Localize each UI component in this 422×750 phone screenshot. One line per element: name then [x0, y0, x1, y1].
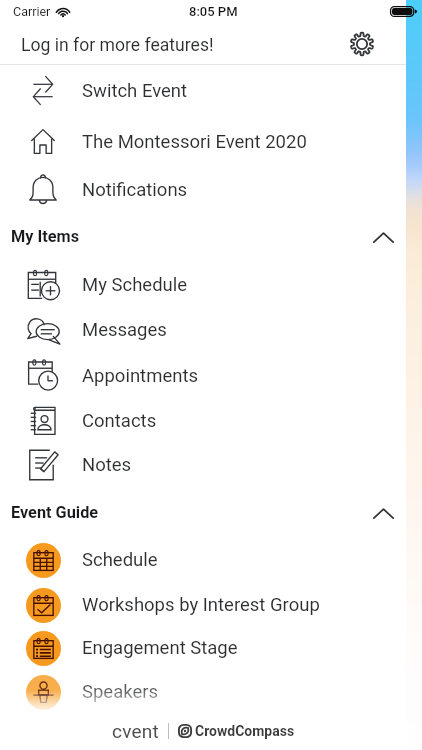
button[interactable]: Messages — [0, 307, 406, 352]
staticText: 8:05 PM — [189, 4, 238, 19]
button[interactable]: Workshops by Interest Group — [0, 583, 406, 627]
staticText: Appointments — [82, 365, 199, 387]
staticText: Contacts — [82, 410, 157, 432]
staticText: cvent — [112, 720, 159, 742]
staticText: My Schedule — [82, 274, 188, 296]
staticText: The Montessori Event 2020 — [82, 131, 307, 153]
staticText: Speakers — [82, 681, 159, 703]
button[interactable]: Switch Event — [0, 68, 406, 113]
button[interactable]: The Montessori Event 2020 — [0, 119, 406, 164]
staticText: Notifications — [82, 179, 188, 201]
button[interactable]: Settings — [345, 28, 379, 62]
button[interactable]: Notifications — [0, 167, 406, 212]
button[interactable]: My Items — [0, 213, 406, 259]
button[interactable]: Notes — [0, 442, 406, 487]
button[interactable]: Engagement Stage — [0, 626, 406, 670]
staticText: Switch Event — [82, 80, 188, 102]
staticText: Engagement Stage — [82, 637, 238, 659]
staticText: Schedule — [82, 549, 158, 571]
button[interactable]: Schedule — [0, 538, 406, 582]
button[interactable]: My Schedule — [0, 262, 406, 307]
staticText: CrowdCompass — [195, 723, 295, 739]
staticText: My Items — [11, 227, 80, 246]
staticText: Log in for more features! — [21, 35, 214, 56]
button[interactable]: Contacts — [0, 398, 406, 443]
button[interactable]: Event Guide — [0, 489, 406, 535]
button[interactable]: Speakers — [0, 670, 406, 714]
staticText: Carrier — [13, 4, 51, 19]
staticText: Event Guide — [11, 503, 99, 522]
button[interactable]: cvent — [0, 718, 406, 744]
staticText: Notes — [82, 454, 132, 476]
button[interactable]: Log in for more features! — [21, 26, 214, 64]
staticText: Messages — [82, 319, 167, 341]
staticText: Workshops by Interest Group — [82, 594, 320, 616]
button[interactable]: Appointments — [0, 353, 406, 398]
